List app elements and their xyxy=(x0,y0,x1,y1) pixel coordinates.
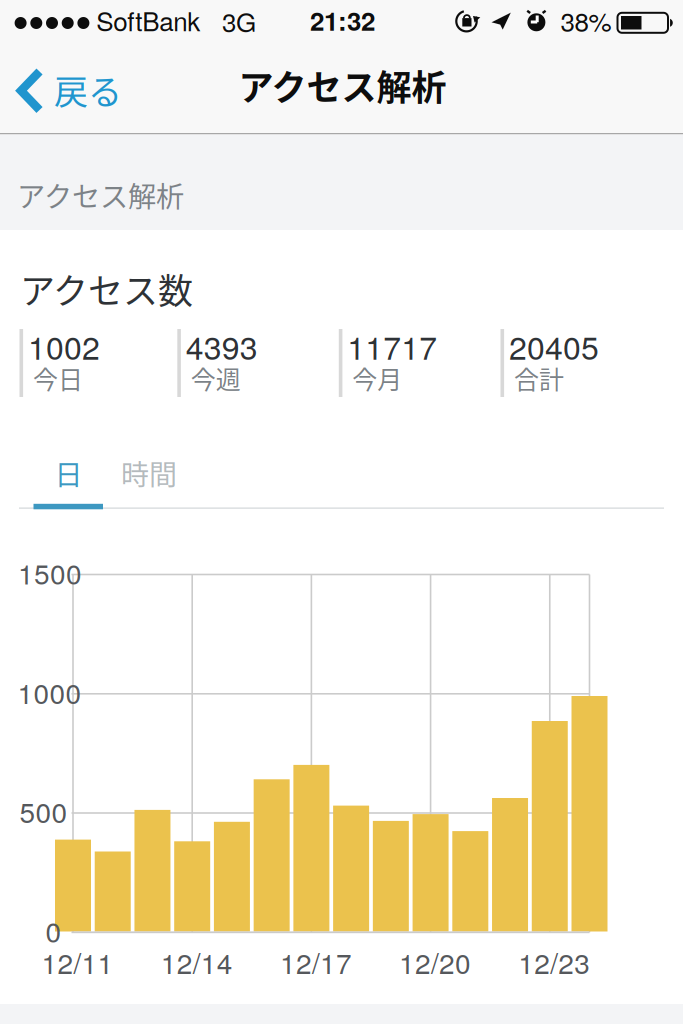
staticText: 20405 xyxy=(509,323,599,369)
staticText: 12/11 xyxy=(41,942,113,982)
staticText: 500 xyxy=(20,791,68,831)
staticText: 合計 xyxy=(514,360,564,396)
staticText: アクセス数 xyxy=(20,263,193,314)
button[interactable]: 戻る xyxy=(13,64,125,116)
staticText: 3G xyxy=(222,2,256,39)
button[interactable]: 日 xyxy=(33,448,103,498)
staticText: アクセス解析 xyxy=(17,174,184,215)
button[interactable]: 時間 xyxy=(111,448,187,498)
staticText: 1500 xyxy=(18,552,82,593)
staticText: 0 xyxy=(45,910,61,950)
staticText: 21:32 xyxy=(310,1,375,39)
staticText: 12/17 xyxy=(280,942,352,982)
staticText: 38% xyxy=(560,2,611,39)
staticText: 12/23 xyxy=(518,942,590,982)
staticText: 11717 xyxy=(347,323,437,369)
staticText: 12/14 xyxy=(161,942,233,982)
staticText: 戻る xyxy=(54,65,122,114)
staticText: 時間 xyxy=(121,453,177,493)
staticText: 今月 xyxy=(352,360,402,396)
staticText: 今日 xyxy=(33,360,83,396)
staticText: SoftBank xyxy=(96,1,200,38)
staticText: 日 xyxy=(54,453,82,493)
staticText: 1002 xyxy=(28,323,100,369)
staticText: 12/20 xyxy=(399,942,471,982)
staticText: 4393 xyxy=(186,323,258,369)
staticText: 1000 xyxy=(17,672,81,712)
staticText: 今週 xyxy=(191,360,241,396)
staticText: アクセス解析 xyxy=(238,60,446,111)
